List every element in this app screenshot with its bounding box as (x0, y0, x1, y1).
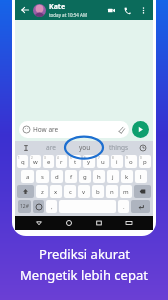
staticText: you (79, 143, 91, 152)
button[interactable]: q (17, 155, 28, 168)
button[interactable]: i (111, 155, 123, 168)
staticText: k (125, 173, 129, 181)
button[interactable]: d (51, 170, 63, 183)
staticText: p (143, 158, 147, 166)
button[interactable]: y (83, 155, 95, 168)
button[interactable]: b (92, 185, 104, 198)
button[interactable]: Shift (17, 185, 34, 198)
button[interactable]: c (64, 185, 76, 198)
button[interactable]: f (65, 170, 77, 183)
staticText: today at 10:54 AM (49, 12, 88, 18)
staticText: b (96, 188, 100, 196)
button[interactable]: Select text (18, 141, 34, 154)
button[interactable]: Home (63, 217, 75, 229)
button[interactable]: a (21, 170, 34, 183)
button[interactable]: Keyboard (123, 217, 135, 229)
button[interactable]: Backspace (134, 185, 151, 198)
button[interactable]: w (30, 155, 41, 168)
staticText: x (54, 188, 58, 196)
staticText: 7 (98, 156, 100, 160)
staticText: d (55, 173, 59, 181)
staticText: . (123, 203, 125, 211)
staticText: n (110, 188, 114, 196)
button[interactable]: Send (132, 121, 149, 138)
staticText: h (97, 173, 101, 181)
staticText: m (123, 188, 129, 196)
staticText: w (33, 158, 38, 166)
button[interactable]: Back (19, 4, 31, 16)
button[interactable]: Contact photo (33, 4, 46, 17)
button[interactable]: . (118, 200, 129, 213)
staticText: How are (33, 125, 59, 134)
button[interactable]: u (97, 155, 109, 168)
staticText: c (69, 188, 72, 196)
button[interactable]: e (43, 155, 54, 168)
button[interactable]: Recents (93, 217, 105, 229)
button[interactable]: n (106, 185, 118, 198)
button[interactable]: x (50, 185, 62, 198)
staticText: a (26, 173, 30, 181)
staticText: g (83, 173, 87, 181)
staticText: 2 (31, 156, 33, 160)
button[interactable]: Recent (136, 141, 150, 154)
staticText: r (60, 158, 63, 166)
button[interactable]: Video call (106, 5, 117, 16)
staticText: e (47, 158, 51, 166)
staticText: z (41, 188, 44, 196)
staticText: 12# (20, 203, 29, 210)
button[interactable]: g (79, 170, 91, 183)
button[interactable]: v (78, 185, 90, 198)
staticText: l (140, 173, 142, 181)
staticText: 3 (44, 156, 46, 160)
button[interactable]: Voice call (122, 5, 133, 16)
button[interactable]: Enter (131, 200, 150, 213)
button[interactable]: , (46, 200, 57, 213)
button[interactable]: t (69, 155, 81, 168)
button[interactable]: z (36, 185, 48, 198)
staticText: 0 (140, 156, 142, 160)
staticText: 5 (70, 156, 72, 160)
staticText: 9 (126, 156, 128, 160)
staticText: Kate (49, 2, 66, 12)
button[interactable]: h (93, 170, 105, 183)
staticText: things (109, 143, 129, 152)
button[interactable]: you (68, 141, 102, 154)
button[interactable]: things (102, 141, 136, 154)
staticText: i (116, 158, 118, 166)
button[interactable]: o (125, 155, 137, 168)
staticText: f (70, 173, 73, 181)
button[interactable]: Emoji (33, 200, 44, 213)
button[interactable]: p (139, 155, 151, 168)
button[interactable]: l (135, 170, 147, 183)
button[interactable]: r (56, 155, 67, 168)
button[interactable]: More options (138, 5, 149, 16)
staticText: y (87, 158, 91, 166)
button[interactable]: Back (33, 217, 45, 229)
staticText: j (112, 173, 114, 181)
staticText: 6 (84, 156, 86, 160)
button[interactable]: are (34, 141, 68, 154)
button[interactable]: How are (19, 121, 129, 138)
staticText: o (129, 158, 133, 166)
button[interactable]: m (120, 185, 132, 198)
staticText: Mengetik lebih cepat (20, 266, 148, 284)
staticText: , (51, 203, 53, 211)
staticText: t (74, 158, 77, 166)
staticText: 8 (112, 156, 114, 160)
button[interactable]: Attach (117, 126, 125, 134)
staticText: 4 (57, 156, 59, 160)
staticText: u (101, 158, 105, 166)
button[interactable]: j (107, 170, 119, 183)
staticText: Prediksi akurat (39, 245, 130, 263)
staticText: 1 (18, 156, 20, 160)
staticText: are (46, 143, 56, 152)
button[interactable]: k (121, 170, 133, 183)
staticText: s (41, 173, 44, 181)
staticText: v (82, 188, 86, 196)
button[interactable]: 12# (18, 200, 31, 213)
button[interactable]: s (36, 170, 49, 183)
staticText: q (21, 158, 25, 166)
